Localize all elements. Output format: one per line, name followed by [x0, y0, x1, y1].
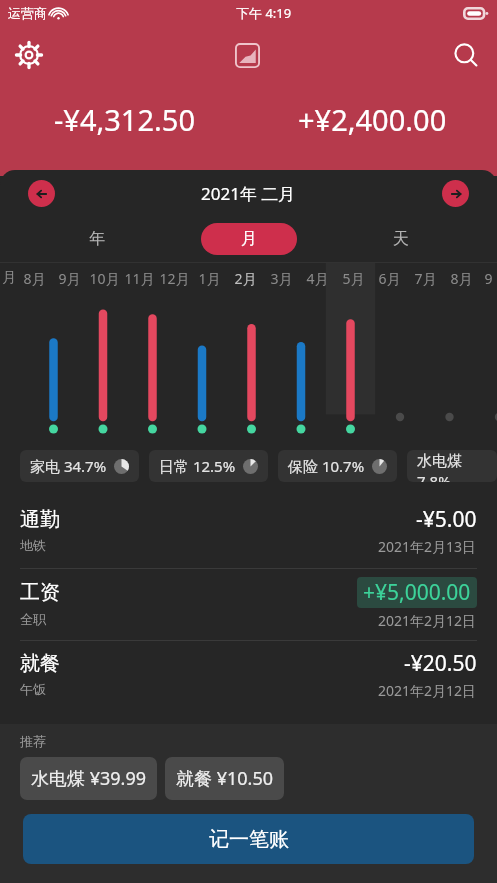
staticText: 地铁 — [20, 537, 46, 553]
staticText: 保险 10.7% — [288, 456, 365, 476]
staticText: 6月 — [378, 269, 401, 288]
button[interactable]: Chart — [225, 33, 269, 77]
staticText: 2月 — [234, 269, 257, 288]
button[interactable]: 工资 — [0, 569, 497, 640]
staticText: 天 — [393, 229, 409, 249]
staticText: 11月 — [124, 269, 155, 288]
button[interactable]: Search — [445, 34, 487, 76]
button[interactable]: 月 — [201, 223, 297, 255]
staticText: 3月 — [270, 269, 293, 288]
staticText: 记一笔账 — [209, 827, 289, 852]
button[interactable]: 年 — [48, 223, 145, 255]
staticText: -¥5.00 — [416, 505, 477, 534]
staticText: 水电煤 7.8% — [417, 450, 487, 482]
staticText: 9 — [484, 269, 493, 288]
staticText: 月 — [2, 269, 16, 287]
button[interactable]: 记一笔账 — [23, 814, 474, 864]
staticText: 午饭 — [20, 681, 46, 697]
button[interactable]: 日常 12.5% — [149, 450, 268, 482]
staticText: 8月 — [450, 269, 473, 288]
staticText: 2021年2月13日 — [378, 537, 477, 556]
staticText: -¥4,312.50 — [54, 100, 195, 139]
staticText: 日常 12.5% — [159, 456, 236, 476]
staticText: 2021年2月12日 — [378, 681, 477, 700]
button[interactable]: Settings — [8, 34, 50, 76]
staticText: 10月 — [89, 269, 120, 288]
staticText: 就餐 — [20, 651, 60, 676]
staticText: 水电煤 ¥39.99 — [31, 766, 146, 791]
staticText: 就餐 ¥10.50 — [176, 766, 273, 791]
button[interactable]: 天 — [353, 223, 449, 255]
staticText: 12月 — [159, 269, 190, 288]
staticText: 9月 — [58, 269, 81, 288]
staticText: 7月 — [414, 269, 437, 288]
staticText: 全职 — [20, 611, 46, 627]
staticText: 2021年 二月 — [201, 182, 296, 205]
staticText: 4月 — [306, 269, 329, 288]
button[interactable]: 就餐 — [0, 641, 497, 712]
staticText: -¥20.50 — [404, 649, 477, 678]
staticText: 2021年2月12日 — [378, 611, 477, 630]
staticText: +¥5,000.00 — [363, 578, 471, 607]
staticText: 下午 4:19 — [236, 4, 292, 22]
button[interactable]: 保险 10.7% — [278, 450, 397, 482]
button[interactable]: 家电 34.7% — [20, 450, 139, 482]
staticText: 家电 34.7% — [30, 456, 107, 476]
staticText: 月 — [241, 229, 257, 249]
button[interactable]: Next — [442, 180, 469, 207]
staticText: 推荐 — [20, 733, 46, 749]
button[interactable]: Previous — [28, 180, 55, 207]
button[interactable]: 水电煤 ¥39.99 — [20, 757, 157, 800]
button[interactable]: 水电煤 7.8% — [407, 450, 497, 482]
staticText: 1月 — [198, 269, 221, 288]
staticText: 8月 — [23, 269, 46, 288]
staticText: 运营商 — [8, 5, 47, 21]
button[interactable]: 通勤 — [0, 497, 497, 568]
staticText: 工资 — [20, 580, 60, 605]
staticText: 年 — [89, 229, 105, 249]
staticText: 通勤 — [20, 507, 60, 532]
staticText: +¥2,400.00 — [298, 100, 447, 139]
button[interactable]: 就餐 ¥10.50 — [165, 757, 284, 800]
staticText: 5月 — [342, 269, 365, 288]
